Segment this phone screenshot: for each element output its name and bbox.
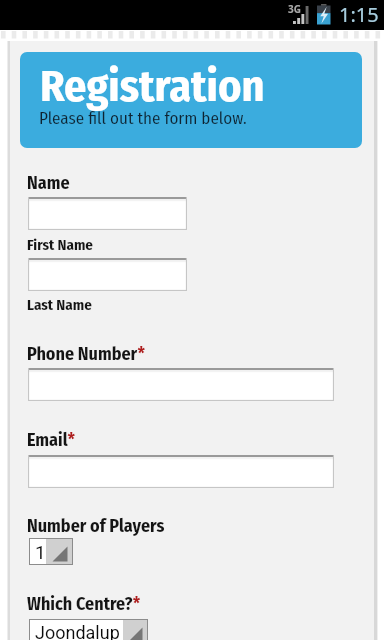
staticText: Email* bbox=[27, 429, 75, 451]
staticText: 1:15 bbox=[339, 1, 379, 28]
staticText: Phone Number* bbox=[27, 343, 146, 365]
staticText: Please fill out the form below. bbox=[39, 108, 247, 128]
staticText: Registration bbox=[40, 60, 265, 113]
button[interactable]: Text input bbox=[28, 455, 334, 488]
staticText: Joondalup bbox=[35, 622, 120, 640]
staticText: 1 bbox=[35, 541, 46, 563]
button[interactable]: Text input bbox=[28, 368, 334, 401]
button[interactable]: 1 bbox=[30, 539, 72, 564]
staticText: Last Name bbox=[27, 296, 92, 314]
button[interactable]: Joondalup bbox=[30, 620, 147, 640]
staticText: 3G bbox=[288, 2, 301, 16]
button[interactable]: Text input bbox=[28, 258, 187, 291]
button[interactable]: Text input bbox=[28, 197, 187, 230]
staticText: Name bbox=[27, 172, 70, 194]
button[interactable]: Registration bbox=[20, 52, 362, 148]
staticText: First Name bbox=[27, 236, 93, 254]
staticText: Number of Players bbox=[27, 515, 165, 537]
staticText: Which Centre?* bbox=[27, 593, 141, 615]
